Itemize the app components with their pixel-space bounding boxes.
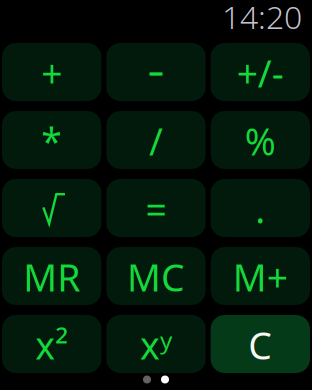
staticText: 14:20	[222, 0, 302, 38]
staticText: MR	[23, 252, 80, 302]
button[interactable]: MC	[106, 247, 206, 305]
button[interactable]: *	[2, 111, 101, 169]
staticText: *	[41, 116, 62, 166]
button[interactable]: x²	[2, 315, 101, 373]
staticText: MC	[127, 252, 185, 302]
button[interactable]: .	[211, 179, 310, 237]
staticText: +/-	[237, 48, 284, 98]
button[interactable]: Square root	[2, 179, 101, 237]
staticText: M+	[233, 252, 288, 302]
staticText: xʸ	[140, 320, 172, 370]
button[interactable]: C	[211, 315, 310, 373]
button[interactable]: Minus	[106, 43, 206, 101]
button[interactable]: %	[211, 111, 310, 169]
button[interactable]: +	[2, 43, 101, 101]
button[interactable]: /	[106, 111, 206, 169]
button[interactable]: MR	[2, 247, 101, 305]
button[interactable]: xʸ	[106, 315, 206, 373]
staticText: C	[248, 320, 272, 370]
staticText: +	[41, 48, 62, 98]
staticText: %	[245, 116, 276, 166]
button[interactable]: +/-	[211, 43, 310, 101]
staticText: x²	[35, 320, 68, 370]
staticText: =	[145, 184, 166, 234]
button[interactable]: =	[106, 179, 206, 237]
staticText: /	[149, 116, 163, 166]
button[interactable]: M+	[211, 247, 310, 305]
staticText: .	[255, 184, 265, 234]
